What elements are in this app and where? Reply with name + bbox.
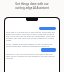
staticText: Absolutely. I will draft the summary and… — [6, 53, 57, 59]
staticText: Get things done with our cutting-edge AI… — [1, 2, 63, 10]
button[interactable]: Sent message — [39, 27, 56, 30]
staticText: Sure! Here is a concise plan to help you… — [6, 31, 57, 47]
button[interactable]: Sent message — [41, 48, 56, 52]
